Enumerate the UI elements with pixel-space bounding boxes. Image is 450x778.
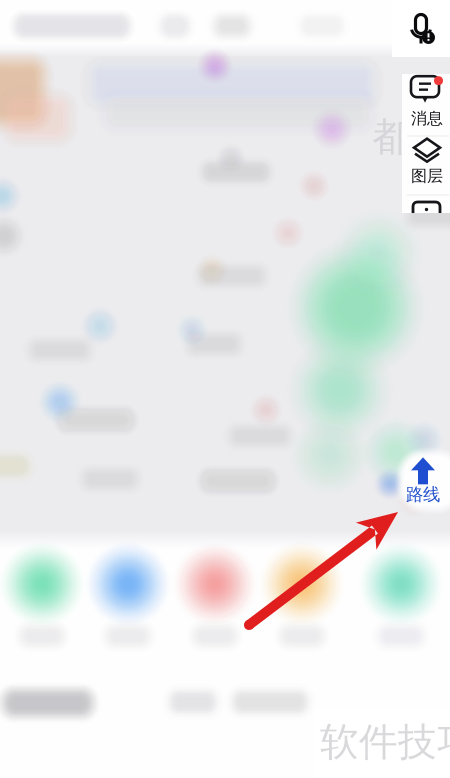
staticText: 软件技巧 bbox=[320, 718, 450, 766]
button[interactable]: 图层 bbox=[403, 135, 450, 189]
staticText: 消息 bbox=[411, 109, 443, 128]
button[interactable]: 消息 bbox=[403, 75, 450, 131]
staticText: 都 bbox=[372, 113, 411, 161]
button[interactable]: Microphone bbox=[392, 0, 450, 57]
staticText: 路线 bbox=[406, 484, 440, 505]
button[interactable]: 路线 bbox=[396, 457, 450, 505]
staticText: 图层 bbox=[411, 166, 443, 186]
